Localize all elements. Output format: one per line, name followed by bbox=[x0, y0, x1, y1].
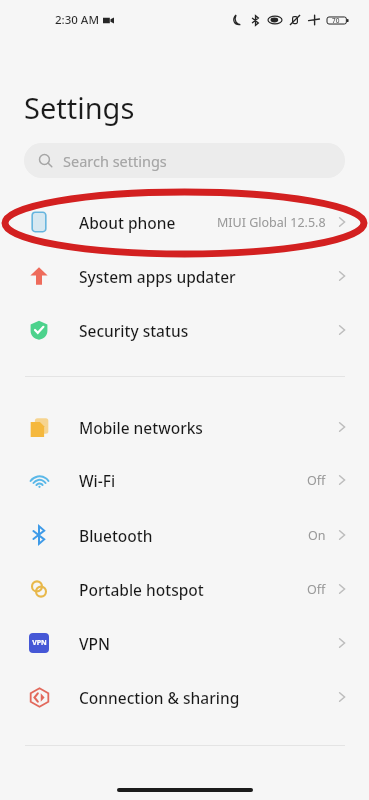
button[interactable]: VPN bbox=[0, 617, 369, 669]
staticText: Off bbox=[307, 581, 326, 598]
staticText: 70 bbox=[332, 16, 340, 25]
staticText: Search settings bbox=[63, 151, 167, 171]
staticText: MIUI Global 12.5.8 bbox=[217, 214, 326, 231]
button[interactable]: Wi-Fi bbox=[0, 454, 369, 506]
staticText: Bluetooth bbox=[79, 525, 308, 546]
button[interactable]: Security status bbox=[0, 304, 369, 356]
button[interactable]: Portable hotspot bbox=[0, 563, 369, 615]
button[interactable]: System apps updater bbox=[0, 250, 369, 302]
button[interactable]: Search settings bbox=[24, 143, 345, 178]
staticText: Security status bbox=[79, 320, 335, 341]
button[interactable]: Connection & sharing bbox=[0, 671, 369, 723]
staticText: System apps updater bbox=[79, 266, 335, 287]
staticText: VPN bbox=[32, 638, 47, 648]
staticText: Off bbox=[307, 472, 326, 489]
staticText: 2:30 AM bbox=[55, 12, 99, 28]
button[interactable]: Mobile networks bbox=[0, 401, 369, 453]
staticText: VPN bbox=[79, 633, 335, 654]
staticText: About phone bbox=[79, 212, 217, 233]
staticText: Wi-Fi bbox=[79, 470, 307, 491]
staticText: Connection & sharing bbox=[79, 687, 335, 708]
staticText: Portable hotspot bbox=[79, 579, 307, 600]
staticText: Settings bbox=[24, 88, 135, 127]
staticText: On bbox=[308, 527, 326, 544]
staticText: Mobile networks bbox=[79, 417, 335, 438]
button[interactable]: Bluetooth bbox=[0, 509, 369, 561]
button[interactable]: About phone bbox=[0, 196, 369, 248]
